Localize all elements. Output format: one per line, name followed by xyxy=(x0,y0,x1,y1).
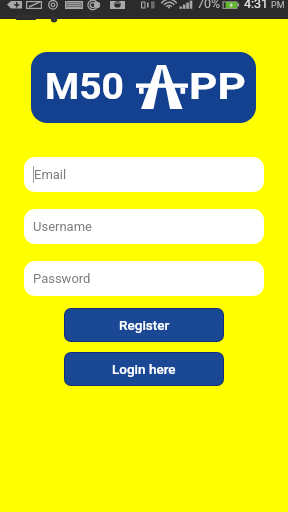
staticText: Register xyxy=(119,317,170,333)
staticText: M50 xyxy=(45,65,124,108)
button[interactable]: Login here xyxy=(65,353,223,385)
button[interactable]: Register xyxy=(65,309,223,341)
staticText: PP xyxy=(189,65,246,108)
staticText: Email xyxy=(34,167,67,182)
staticText: Login here xyxy=(112,361,176,377)
button[interactable]: Password xyxy=(24,261,264,296)
button[interactable]: Email xyxy=(24,157,264,192)
staticText: Password xyxy=(33,271,91,286)
staticText: 70% xyxy=(197,0,221,11)
button[interactable]: M50 xyxy=(31,52,256,123)
staticText: 4:31 xyxy=(244,0,269,11)
staticText: PM xyxy=(271,0,285,11)
staticText: Username xyxy=(33,219,92,234)
button[interactable]: Username xyxy=(24,209,264,244)
